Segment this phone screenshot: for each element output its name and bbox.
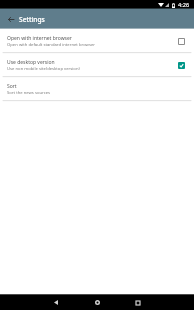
button[interactable]: Sort [0,77,194,101]
button[interactable]: Back [43,295,69,310]
staticText: Open with default standard internet brow… [7,42,96,48]
staticText: Use non mobile site(desktop version) [7,66,80,72]
button[interactable] [175,35,187,47]
staticText: Sort the news sources [7,90,51,96]
staticText: 4:26 [178,1,190,9]
staticText: Settings [19,15,45,24]
staticText: Open with internet browser [7,35,72,42]
button[interactable]: Home [84,295,110,310]
button[interactable]: Use desktop version [0,53,194,77]
button[interactable]: Recents [125,295,151,310]
staticText: Use desktop version [7,59,55,66]
staticText: Sort [7,83,17,90]
button[interactable]: Back [5,10,17,29]
button[interactable]: Open with internet browser [0,29,194,53]
button[interactable] [175,59,187,71]
